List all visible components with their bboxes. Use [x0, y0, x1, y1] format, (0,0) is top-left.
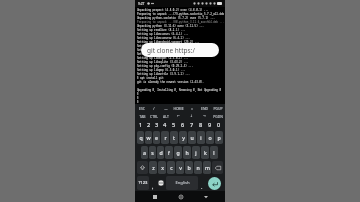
button[interactable]: 9	[205, 120, 214, 130]
staticText: k	[204, 149, 207, 156]
button[interactable]: 0	[214, 120, 223, 130]
button[interactable]: Enter	[208, 177, 221, 190]
button[interactable]: ?123	[137, 176, 149, 190]
button[interactable]: m	[203, 161, 211, 174]
staticText: Setting up zlib (1.3-1) ...	[137, 44, 180, 48]
button[interactable]: CTRL	[148, 112, 160, 120]
button[interactable]: w	[145, 131, 152, 144]
button[interactable]: s	[149, 146, 156, 159]
button[interactable]: Home	[175, 191, 186, 202]
button[interactable]: 4	[161, 120, 169, 130]
staticText: Setting up openssl (3.1.4) ...	[137, 52, 184, 56]
staticText: 3	[155, 121, 159, 129]
button[interactable]: PGDN	[211, 112, 224, 120]
button[interactable]: /	[148, 104, 160, 112]
button[interactable]: PGUP	[211, 104, 224, 112]
button[interactable]: z	[149, 161, 157, 174]
button[interactable]: 7	[187, 120, 196, 130]
staticText: ↓	[190, 114, 193, 118]
staticText: Setting up libcurl (8.4.0) ...	[137, 48, 184, 52]
button[interactable]: English	[166, 176, 198, 190]
staticText: Setting up libncursesw (6.4-1) ...	[137, 36, 190, 40]
button[interactable]: 5	[169, 120, 178, 130]
staticText: Unpacking pexpect (4.8.0-2) over (4.8.0-…	[137, 8, 209, 12]
staticText: a	[143, 149, 146, 156]
button[interactable]: Back	[200, 191, 211, 202]
button[interactable]: k	[201, 146, 209, 159]
button[interactable]: 1	[137, 120, 145, 130]
staticText: /	[153, 106, 155, 111]
staticText: g	[176, 149, 180, 156]
button[interactable]: e	[153, 131, 160, 144]
button[interactable]: Switch language	[157, 176, 165, 190]
button[interactable]: q	[137, 131, 144, 144]
staticText: m	[205, 164, 210, 171]
staticText: i	[200, 134, 202, 141]
staticText: 4	[163, 121, 167, 129]
button[interactable]: Recent apps	[149, 191, 160, 202]
button[interactable]: r	[161, 131, 169, 144]
button[interactable]: o	[206, 131, 214, 144]
staticText: $	[137, 100, 139, 104]
button[interactable]: u	[188, 131, 196, 144]
button[interactable]: ALT	[160, 112, 172, 120]
button[interactable]: n	[194, 161, 202, 174]
staticText: ,	[152, 183, 154, 190]
staticText: l	[213, 149, 215, 156]
button[interactable]: ,	[150, 176, 156, 190]
button[interactable]: ESC	[136, 104, 148, 112]
button[interactable]: TAB	[136, 112, 148, 120]
button[interactable]: d	[157, 146, 164, 159]
staticText: w	[146, 134, 151, 141]
button[interactable]: Shift	[137, 161, 148, 174]
staticText: x	[161, 164, 164, 171]
staticText: →	[203, 114, 206, 118]
button[interactable]: y	[179, 131, 187, 144]
staticText: d	[159, 149, 163, 156]
staticText: git clone https:/	[147, 46, 195, 55]
staticText: Unpacking python-socketio (5.7.2) over (…	[137, 16, 215, 20]
button[interactable]: l	[210, 146, 218, 159]
staticText: END	[201, 106, 208, 111]
staticText: —	[164, 106, 168, 111]
staticText: Setting up readline (8.2.1) ...	[137, 28, 186, 32]
staticText: r	[164, 134, 167, 141]
button[interactable]: 8	[196, 120, 205, 130]
button[interactable]: .	[199, 176, 205, 190]
button[interactable]: 2	[145, 120, 153, 130]
button[interactable]: →	[198, 112, 211, 120]
button[interactable]: g	[174, 146, 182, 159]
button[interactable]: j	[192, 146, 200, 159]
button[interactable]: 3	[153, 120, 161, 130]
button[interactable]: p	[215, 131, 223, 144]
button[interactable]: t	[170, 131, 178, 144]
button[interactable]: =	[185, 104, 198, 112]
staticText: j	[195, 149, 197, 156]
staticText: Upgrading 0, Installing 0, Removing 0, N…	[137, 88, 222, 92]
button[interactable]: END	[198, 104, 211, 112]
button[interactable]: HOME	[172, 104, 185, 112]
button[interactable]: ←	[172, 112, 185, 120]
button[interactable]: git clone https:/	[141, 43, 219, 57]
staticText: HOME	[173, 106, 184, 111]
staticText: 9:27	[138, 2, 145, 6]
staticText: ALT	[163, 114, 169, 119]
button[interactable]: x	[158, 161, 166, 174]
staticText: git is already the newest version (2.43.…	[137, 80, 204, 84]
button[interactable]: 6	[178, 120, 187, 130]
staticText: Unpacking python (3.11.6) over (3.11.5) …	[137, 24, 204, 28]
button[interactable]: h	[183, 146, 191, 159]
button[interactable]: —	[160, 104, 172, 112]
button[interactable]: i	[197, 131, 205, 144]
staticText: Setting up libncurses (6.4-1) ...	[137, 32, 189, 36]
staticText: o	[208, 134, 212, 141]
staticText: 0	[217, 121, 221, 129]
button[interactable]: v	[176, 161, 184, 174]
button[interactable]: a	[141, 146, 148, 159]
button[interactable]: Backspace	[212, 161, 223, 174]
button[interactable]: b	[185, 161, 193, 174]
button[interactable]: f	[165, 146, 173, 159]
button[interactable]: c	[167, 161, 175, 174]
staticText: q	[139, 134, 143, 141]
button[interactable]: ↓	[185, 112, 198, 120]
